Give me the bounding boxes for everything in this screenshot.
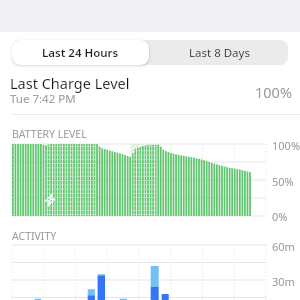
staticText: 60m — [272, 239, 295, 254]
staticText: 50% — [272, 174, 294, 189]
staticText: 0% — [272, 209, 288, 224]
staticText: BATTERY LEVEL — [12, 127, 87, 141]
staticText: ACTIVITY — [12, 229, 57, 243]
button[interactable]: Last 8 Days — [150, 40, 288, 65]
button[interactable]: Last 24 Hours — [12, 40, 149, 65]
staticText: 100% — [255, 82, 292, 102]
staticText: 30m — [272, 274, 295, 289]
staticText: 100% — [272, 138, 300, 153]
staticText: Last 8 Days — [189, 45, 250, 61]
staticText: Tue 7:42 PM — [10, 91, 76, 107]
staticText: Last Charge Level — [10, 73, 130, 93]
staticText: Last 24 Hours — [42, 45, 119, 61]
